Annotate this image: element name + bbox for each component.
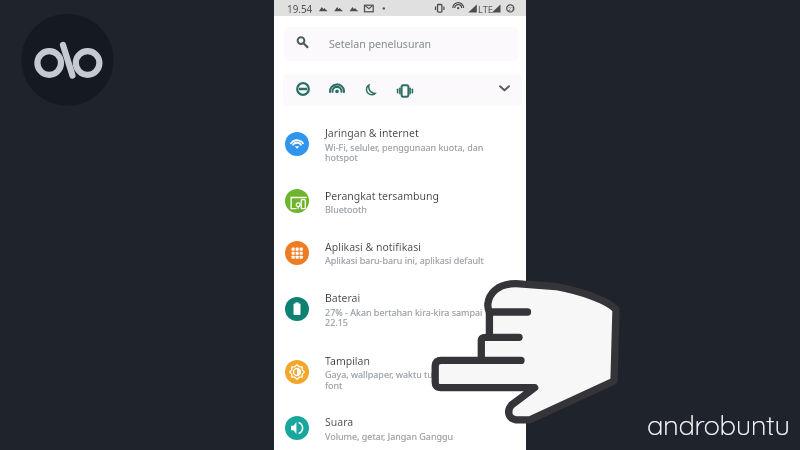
button[interactable]: Suara — [274, 402, 526, 450]
staticText: Jaringan & internet — [325, 126, 419, 140]
other: Expand quick settings — [499, 85, 510, 96]
staticText: Setelan penelusuran — [329, 37, 432, 51]
other: Vibrate — [397, 83, 413, 99]
button[interactable]: androbuntu — [647, 407, 790, 441]
button[interactable]: Baterai — [274, 283, 526, 334]
staticText: font — [325, 379, 343, 391]
staticText: Wi-Fi, seluler, penggunaan kuota, dan — [325, 141, 484, 153]
staticText: 19.54 — [287, 2, 313, 15]
button[interactable]: Do not disturb — [283, 74, 522, 106]
staticText: androbuntu — [647, 407, 790, 441]
staticText: 27 — [508, 5, 514, 12]
staticText: Gaya, wallpaper, waktu tunggu layar, uku… — [325, 368, 512, 380]
staticText: Aplikasi & notifikasi — [325, 240, 421, 254]
staticText: Aplikasi baru-baru ini, aplikasi default — [325, 254, 484, 266]
staticText: 27% - Akan bertahan kira-kira sampai — [325, 306, 483, 318]
staticText: Suara — [325, 415, 354, 429]
staticText: LTE — [478, 3, 493, 16]
other: Night light — [364, 82, 379, 97]
button[interactable]: Setelan penelusuran — [284, 27, 518, 61]
button[interactable]: Perangkat tersambung — [274, 175, 526, 226]
staticText: hotspot — [325, 151, 358, 163]
staticText: Perangkat tersambung — [325, 189, 439, 203]
staticText: 22.15 — [325, 316, 349, 328]
staticText: Bluetooth — [325, 203, 367, 215]
button[interactable]: Aplikasi & notifikasi — [274, 227, 526, 278]
staticText: Baterai — [325, 291, 361, 305]
button[interactable]: Jaringan & internet — [274, 118, 526, 169]
other: Hotspot — [330, 83, 344, 97]
staticText: Tampilan — [325, 354, 370, 368]
staticText: Volume, getar, Jangan Ganggu — [325, 430, 454, 442]
other: Tap here — [0, 0, 800, 450]
other: Do not disturb — [296, 82, 310, 96]
button[interactable]: Tampilan — [274, 346, 526, 397]
